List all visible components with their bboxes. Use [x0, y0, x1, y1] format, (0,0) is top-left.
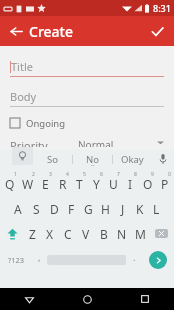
staticText: 9	[151, 171, 154, 178]
button[interactable]: S	[27, 196, 45, 221]
staticText: 2	[32, 171, 35, 178]
staticText: A	[14, 201, 22, 217]
button[interactable]: R	[54, 171, 71, 196]
staticText: 1	[14, 171, 17, 178]
button[interactable]: H	[97, 196, 114, 221]
staticText: No	[86, 153, 99, 166]
button[interactable]: Q	[1, 171, 19, 196]
button[interactable]: Body	[10, 85, 164, 107]
staticText: 6	[100, 171, 103, 178]
button[interactable]: X	[41, 221, 59, 246]
button[interactable]: .	[126, 246, 142, 274]
button[interactable]: Y	[88, 171, 105, 196]
staticText: H	[101, 201, 110, 217]
staticText: 0	[168, 171, 171, 178]
button[interactable]: G	[80, 196, 97, 221]
button[interactable]: Title	[10, 55, 164, 77]
button[interactable]: No	[73, 150, 112, 168]
button[interactable]: U	[105, 171, 122, 196]
staticText: •••	[91, 164, 95, 168]
staticText: Create	[29, 22, 73, 41]
staticText: So	[47, 153, 58, 166]
staticText: M	[135, 226, 146, 242]
button[interactable]: O	[139, 171, 156, 196]
button[interactable]: C	[59, 221, 77, 246]
staticText: 5	[83, 171, 86, 178]
staticText: O	[143, 176, 153, 192]
staticText: Priority	[10, 138, 48, 147]
button[interactable]: D	[45, 196, 63, 221]
staticText: K	[136, 201, 144, 217]
staticText: E	[42, 176, 49, 192]
staticText: ?123	[8, 255, 25, 265]
button[interactable]: Home	[58, 288, 116, 310]
staticText: V	[82, 226, 90, 242]
staticText: Title	[11, 59, 33, 74]
button[interactable]: Z	[24, 221, 41, 246]
button[interactable]: W	[19, 171, 37, 196]
button[interactable]: Priority	[10, 138, 164, 147]
button[interactable]: E	[37, 171, 54, 196]
button[interactable]: Back	[0, 288, 58, 310]
staticText: Okay	[121, 153, 144, 166]
staticText: 7	[117, 171, 120, 178]
staticText: G	[84, 201, 93, 217]
staticText: 3	[49, 171, 52, 178]
button[interactable]: I	[122, 171, 139, 196]
staticText: Body	[10, 89, 37, 104]
button[interactable]: T	[71, 171, 88, 196]
staticText: Y	[93, 176, 100, 192]
staticText: 8:31	[153, 2, 171, 14]
button[interactable]: Back	[5, 20, 27, 42]
staticText: .	[133, 251, 136, 263]
staticText: Normal	[78, 138, 114, 147]
button[interactable]: Ongoing	[10, 115, 164, 131]
staticText: L	[153, 201, 160, 217]
button[interactable]: A	[9, 196, 27, 221]
staticText: Z	[29, 226, 36, 242]
staticText: R	[59, 176, 67, 192]
staticText: N	[117, 226, 127, 242]
staticText: I	[128, 176, 133, 192]
button[interactable]: K	[131, 196, 148, 221]
staticText: B	[100, 226, 108, 242]
button[interactable]: Recents	[116, 288, 174, 310]
staticText: C	[64, 226, 72, 242]
button[interactable]: Save	[146, 20, 168, 42]
button[interactable]: M	[131, 221, 149, 246]
staticText: S	[33, 201, 40, 217]
button[interactable]: So	[33, 150, 72, 168]
button[interactable]: F	[63, 196, 80, 221]
button[interactable]: N	[113, 221, 131, 246]
staticText: X	[46, 226, 54, 242]
staticText: 8	[134, 171, 137, 178]
button[interactable]: B	[95, 221, 113, 246]
staticText: F	[68, 201, 75, 217]
button[interactable]: L	[148, 196, 165, 221]
staticText: T	[76, 176, 83, 192]
button[interactable]: ?123	[1, 246, 31, 274]
button[interactable]: Voice input	[152, 150, 174, 168]
staticText: ,	[38, 251, 41, 263]
staticText: J	[121, 201, 125, 217]
button[interactable]: Backspace	[149, 221, 173, 246]
staticText: 4	[66, 171, 69, 178]
staticText: Ongoing	[26, 117, 66, 130]
staticText: Q	[5, 176, 15, 192]
staticText: P	[161, 176, 169, 192]
button[interactable]: ,	[31, 246, 47, 274]
button[interactable]: Suggestions	[12, 147, 33, 165]
staticText: W	[22, 176, 34, 192]
button[interactable]: P	[156, 171, 173, 196]
button[interactable]: Enter	[142, 246, 173, 274]
button[interactable]: J	[114, 196, 131, 221]
button[interactable]: Okay	[113, 150, 152, 168]
staticText: U	[109, 176, 118, 192]
button[interactable]: Shift	[1, 221, 24, 246]
staticText: D	[50, 201, 59, 217]
button[interactable]: V	[77, 221, 95, 246]
